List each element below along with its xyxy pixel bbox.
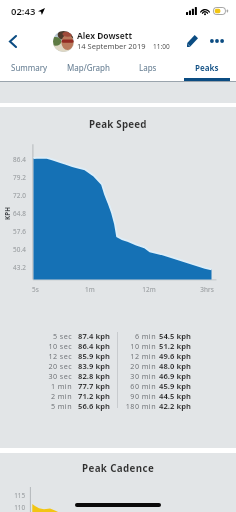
staticText: 115: [14, 491, 25, 500]
staticText: 64.8: [12, 209, 26, 218]
staticText: 12 min: [130, 351, 156, 361]
staticText: 57.6: [12, 227, 26, 236]
staticText: 83.9 kph: [78, 361, 110, 371]
staticText: Peak Cadence: [82, 462, 155, 475]
staticText: 20 min: [130, 361, 156, 371]
staticText: 46.9 kph: [159, 371, 191, 381]
staticText: Summary: [11, 62, 48, 73]
button[interactable]: More options: [207, 31, 227, 51]
button[interactable]: Peaks: [177, 58, 236, 82]
staticText: 10 sec: [48, 341, 72, 351]
staticText: 50.4: [12, 245, 26, 254]
staticText: 71.2 kph: [78, 391, 110, 401]
staticText: 1m: [85, 285, 95, 294]
staticText: 5 sec: [52, 331, 72, 341]
staticText: Alex Dowsett: [77, 30, 133, 41]
staticText: 2 min: [50, 391, 72, 401]
staticText: 51.2 kph: [159, 341, 191, 351]
staticText: 48.0 kph: [159, 361, 191, 371]
staticText: 49.6 kph: [159, 351, 191, 361]
staticText: Peak Speed: [89, 118, 147, 131]
staticText: 82.8 kph: [78, 371, 110, 381]
staticText: 79.2: [12, 173, 26, 182]
staticText: 42.2 kph: [159, 401, 191, 411]
button[interactable]: Map/Graph: [59, 58, 118, 82]
staticText: 6 min: [134, 331, 156, 341]
staticText: 87.4 kph: [78, 331, 110, 341]
staticText: 12m: [142, 285, 156, 294]
staticText: 86.4: [12, 155, 26, 164]
button[interactable]: Summary: [0, 58, 59, 82]
staticText: KPH: [3, 206, 11, 220]
staticText: 90 min: [130, 391, 156, 401]
staticText: 110: [14, 503, 25, 512]
staticText: Peaks: [195, 62, 219, 73]
staticText: Laps: [139, 62, 157, 73]
staticText: 5 min: [50, 401, 72, 411]
staticText: 56.6 kph: [78, 401, 110, 411]
staticText: 72.0: [12, 191, 26, 200]
staticText: Map/Graph: [67, 62, 110, 73]
staticText: 02:43: [11, 5, 36, 18]
staticText: 1 min: [50, 381, 72, 391]
staticText: 14 September 2019: [77, 41, 146, 51]
staticText: 30 min: [130, 371, 156, 381]
staticText: 54.5 kph: [159, 331, 191, 341]
staticText: 60 min: [130, 381, 156, 391]
staticText: 85.9 kph: [78, 351, 110, 361]
staticText: 77.7 kph: [78, 381, 110, 391]
staticText: 30 sec: [48, 371, 72, 381]
button[interactable]: Laps: [118, 58, 177, 82]
staticText: 5s: [32, 285, 39, 294]
staticText: 20 sec: [48, 361, 72, 371]
staticText: 10 min: [130, 341, 156, 351]
staticText: 3hrs: [200, 285, 214, 294]
staticText: 43.2: [12, 263, 26, 272]
staticText: 12 sec: [48, 351, 72, 361]
staticText: 45.9 kph: [159, 381, 191, 391]
staticText: 44.5 kph: [159, 391, 191, 401]
button[interactable]: Edit: [183, 32, 201, 50]
staticText: 11:00: [153, 42, 170, 51]
staticText: 86.4 kph: [78, 341, 110, 351]
button[interactable]: Profile photo: [53, 31, 74, 52]
button[interactable]: Back: [1, 29, 25, 53]
staticText: 180 min: [125, 401, 156, 411]
